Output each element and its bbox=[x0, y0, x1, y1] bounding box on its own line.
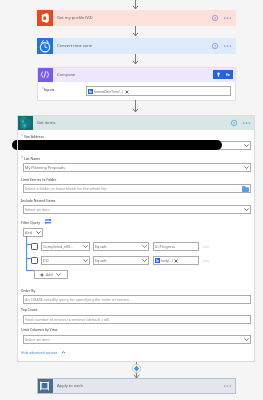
staticText: Select a folder, or leave blank for the … bbox=[25, 186, 107, 191]
staticText: Hide advanced options bbox=[21, 350, 58, 355]
button[interactable]: Switch to advanced mode bbox=[45, 219, 51, 224]
staticText: fx bbox=[89, 90, 92, 94]
button[interactable]: More commands bbox=[223, 43, 232, 49]
staticText: Limit Entries to Folder bbox=[21, 177, 57, 181]
staticText: Select an item bbox=[25, 337, 50, 342]
button[interactable]: Dynamic content bbox=[213, 70, 223, 79]
button[interactable]: Hide advanced options bbox=[21, 350, 66, 355]
staticText: Top Count bbox=[21, 307, 38, 311]
staticText: * bbox=[42, 86, 44, 91]
staticText: Completed_x00... bbox=[43, 244, 74, 249]
staticText: Get items bbox=[37, 120, 56, 126]
button[interactable]: Apply to each bbox=[37, 378, 236, 394]
button[interactable]: Info bbox=[212, 43, 218, 49]
staticText: Get my profile (V2) bbox=[57, 15, 93, 21]
staticText: Select an item bbox=[25, 207, 50, 212]
button[interactable]: An ODATA orderBy query for specifying th… bbox=[23, 295, 251, 304]
staticText: * bbox=[21, 133, 24, 138]
staticText: fx bbox=[156, 259, 159, 263]
staticText: Include Nested Items bbox=[21, 198, 56, 202]
staticText: DO bbox=[43, 258, 49, 263]
staticText: Total number of entries to retrieve (def… bbox=[25, 317, 111, 322]
staticText: Apply to each bbox=[57, 383, 83, 389]
staticText: Limit Columns by View bbox=[21, 327, 58, 331]
button[interactable]: Compose bbox=[37, 67, 236, 82]
button[interactable]: fx bbox=[86, 86, 231, 96]
button[interactable]: Equals bbox=[93, 242, 149, 251]
button[interactable]: My Planning Proposals bbox=[23, 163, 251, 172]
button[interactable]: Completed_x00... bbox=[41, 242, 90, 251]
staticText: Equals bbox=[95, 244, 107, 249]
button[interactable]: Get my profile (V2) bbox=[37, 10, 236, 26]
staticText: Add bbox=[46, 272, 53, 277]
button[interactable]: Expression bbox=[223, 70, 233, 79]
button[interactable]: Select an item bbox=[23, 205, 251, 214]
staticText: Site Address bbox=[24, 134, 44, 138]
button[interactable]: Select condition bbox=[31, 257, 38, 264]
button[interactable]: Select an item bbox=[23, 335, 251, 344]
button[interactable]: Equals bbox=[93, 256, 149, 265]
staticText: Equals bbox=[95, 258, 107, 263]
button[interactable]: Insert a new step bbox=[128, 362, 145, 378]
staticText: Order By bbox=[21, 288, 36, 292]
button[interactable]: Convert time zone bbox=[37, 38, 236, 54]
button[interactable]: Select a folder, or leave blank for the … bbox=[23, 184, 251, 193]
button[interactable]: Info bbox=[231, 120, 237, 126]
staticText: Filter Query bbox=[21, 220, 41, 224]
button[interactable]: Add bbox=[34, 270, 68, 279]
staticText: An ODATA orderBy query for specifying th… bbox=[25, 297, 130, 302]
staticText: List Name bbox=[24, 156, 41, 160]
staticText: Convert time zone bbox=[57, 43, 93, 49]
button[interactable]: DO bbox=[41, 256, 90, 265]
staticText: formatDateTime(...) bbox=[94, 90, 124, 94]
button[interactable]: In Progress bbox=[153, 242, 199, 251]
button[interactable]: Row options bbox=[203, 258, 209, 264]
staticText: In Progress bbox=[155, 244, 176, 249]
button[interactable]: Total number of entries to retrieve (def… bbox=[23, 315, 251, 324]
button[interactable]: Select condition bbox=[31, 243, 38, 250]
staticText: Inputs bbox=[44, 87, 55, 91]
button[interactable]: Remove bbox=[125, 90, 129, 94]
button[interactable]: Info bbox=[212, 15, 218, 21]
staticText: Compose bbox=[57, 72, 76, 78]
staticText: fx bbox=[226, 72, 230, 77]
button[interactable]: Row options bbox=[203, 244, 209, 250]
button[interactable] bbox=[23, 141, 251, 150]
button[interactable]: More commands bbox=[242, 120, 251, 126]
button[interactable]: And bbox=[23, 228, 43, 237]
button[interactable]: More commands bbox=[223, 383, 232, 389]
button[interactable]: fx bbox=[153, 256, 199, 265]
button[interactable]: Get items bbox=[17, 115, 255, 130]
staticText: My Planning Proposals bbox=[25, 165, 66, 170]
button[interactable]: Remove bbox=[174, 259, 178, 263]
button[interactable]: More commands bbox=[223, 15, 232, 21]
staticText: * bbox=[21, 155, 24, 160]
staticText: And bbox=[25, 230, 33, 235]
staticText: body(...) bbox=[161, 259, 173, 263]
